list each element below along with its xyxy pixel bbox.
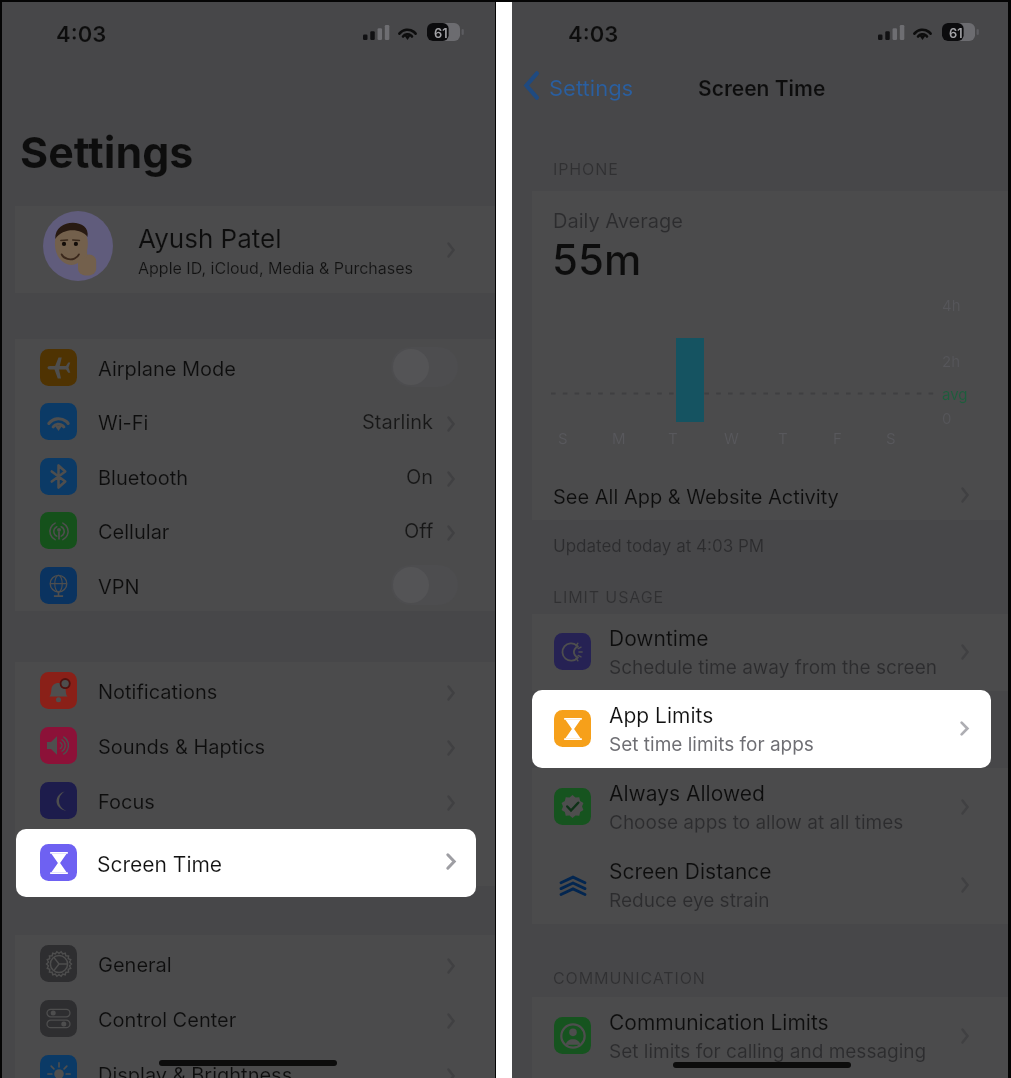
staticText: S — [558, 429, 568, 447]
staticText: Airplane Mode — [98, 357, 236, 381]
button[interactable]: See All App & Website Activity — [532, 467, 1011, 525]
staticText: T — [668, 429, 678, 447]
button[interactable]: Back — [518, 66, 658, 108]
button[interactable]: Display & Brightness — [15, 1046, 496, 1078]
staticText: Starlink — [362, 410, 434, 434]
button[interactable]: VPN toggle — [391, 565, 458, 605]
button[interactable]: Control Center — [15, 991, 496, 1045]
staticText: Focus — [98, 790, 155, 814]
staticText: Set limits for calling and messaging — [609, 1040, 927, 1063]
staticText: 4h — [942, 296, 961, 314]
button[interactable]: General — [15, 936, 496, 990]
staticText: Display & Brightness — [98, 1063, 293, 1078]
staticText: Set time limits for apps — [609, 733, 814, 756]
button[interactable]: Airplane Mode — [15, 340, 496, 394]
staticText: 61 — [434, 25, 448, 41]
button[interactable]: Notifications — [15, 663, 496, 717]
staticText: Schedule time away from the screen — [609, 656, 937, 679]
staticText: Ayush Patel — [138, 223, 282, 254]
staticText: Downtime — [609, 626, 709, 651]
other: Back — [524, 72, 539, 99]
staticText: T — [778, 429, 788, 447]
staticText: Screen Time — [698, 76, 826, 101]
staticText: Bluetooth — [98, 466, 189, 490]
staticText: M — [612, 429, 626, 447]
staticText: LIMIT USAGE — [553, 587, 665, 606]
staticText: General — [98, 953, 172, 977]
button[interactable]: Focus — [15, 773, 496, 827]
staticText: 61 — [949, 25, 963, 41]
staticText: IPHONE — [553, 159, 619, 178]
staticText: Off — [404, 519, 434, 543]
button[interactable]: Downtime — [532, 613, 1011, 691]
button[interactable]: Cellular — [15, 503, 496, 557]
staticText: Cellular — [98, 520, 170, 544]
staticText: App Limits — [609, 703, 714, 728]
button[interactable]: Ayush Patel — [15, 206, 496, 293]
button[interactable]: Wi-Fi — [15, 394, 496, 448]
staticText: Apple ID, iCloud, Media & Purchases — [138, 258, 413, 277]
staticText: 4:03 — [56, 21, 107, 48]
staticText: Screen Time — [97, 852, 223, 877]
button[interactable]: Screen Time — [16, 829, 476, 897]
staticText: Choose apps to allow at all times — [609, 811, 904, 834]
staticText: S — [886, 429, 896, 447]
button[interactable]: Airplane Mode toggle — [391, 347, 458, 387]
button[interactable]: App Limits — [532, 690, 991, 768]
staticText: Notifications — [98, 680, 218, 704]
staticText: Reduce eye strain — [609, 889, 770, 912]
staticText: Settings — [549, 75, 634, 102]
staticText: avg — [942, 385, 968, 403]
staticText: Daily Average — [553, 209, 683, 233]
staticText: 0 — [942, 409, 952, 427]
staticText: Wi-Fi — [98, 411, 149, 435]
button[interactable]: Screen Distance — [532, 846, 1011, 924]
staticText: F — [833, 429, 842, 447]
button[interactable]: VPN — [15, 558, 496, 612]
staticText: Settings — [20, 126, 194, 178]
button[interactable]: Bluetooth — [15, 449, 496, 503]
staticText: 4:03 — [568, 21, 619, 48]
staticText: 2h — [942, 352, 961, 370]
staticText: Control Center — [98, 1008, 237, 1032]
staticText: W — [724, 429, 739, 447]
staticText: 55m — [552, 234, 642, 285]
button[interactable]: Always Allowed — [532, 768, 1011, 846]
staticText: Updated today at 4:03 PM — [553, 536, 765, 557]
button[interactable]: Communication Limits — [532, 997, 1011, 1075]
staticText: Communication Limits — [609, 1010, 829, 1035]
staticText: See All App & Website Activity — [553, 485, 839, 509]
staticText: On — [406, 465, 434, 489]
button[interactable]: Sounds & Haptics — [15, 718, 496, 772]
staticText: COMMUNICATION — [553, 968, 706, 987]
staticText: Always Allowed — [609, 781, 765, 806]
staticText: VPN — [98, 575, 140, 599]
staticText: Screen Distance — [609, 859, 772, 884]
staticText: Sounds & Haptics — [98, 735, 266, 759]
